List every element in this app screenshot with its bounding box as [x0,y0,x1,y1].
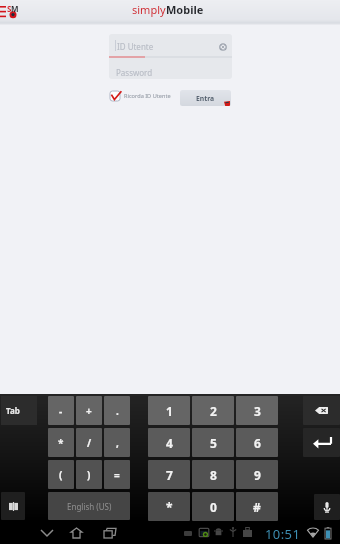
staticText: 7 [166,467,173,483]
button[interactable]: 9 [236,460,278,489]
button[interactable]: Menu [0,5,7,19]
button[interactable]: / [76,428,102,457]
staticText: ) [87,468,91,482]
button[interactable]: 4 [148,428,190,457]
staticText: S [7,3,12,14]
staticText: # [253,499,261,515]
button[interactable]: Ricorda ID Utente [110,90,171,101]
staticText: Mobile [166,2,204,17]
button[interactable]: Enter [303,428,340,457]
staticText: Entra [196,94,215,103]
staticText: 6 [254,435,261,451]
staticText: 8 [210,467,217,483]
button[interactable]: ID Utente [109,34,232,56]
button[interactable]: * [148,492,190,521]
staticText: * [58,436,64,450]
button[interactable]: 0 [192,492,234,521]
button[interactable]: ( [48,460,74,489]
staticText: 5 [210,435,217,451]
button[interactable]: 1 [148,396,190,425]
button[interactable]: 8 [192,460,234,489]
staticText: - [59,404,63,418]
button[interactable]: 6 [236,428,278,457]
button[interactable]: + [76,396,102,425]
button[interactable]: # [236,492,278,521]
button[interactable]: Tab [1,396,37,425]
button[interactable]: Change language [1,492,25,520]
button[interactable]: . [104,396,130,425]
staticText: M [11,3,19,14]
button[interactable]: 3 [236,396,278,425]
button[interactable]: 5 [192,428,234,457]
staticText: / [87,436,92,450]
staticText: 10:51 [265,525,301,543]
button[interactable]: * [48,428,74,457]
staticText: + [86,404,92,418]
staticText: 2 [210,403,217,419]
staticText: Tab [6,405,20,416]
button[interactable]: ) [76,460,102,489]
button[interactable]: Backspace [303,396,340,425]
staticText: 4 [166,435,173,451]
staticText: . [116,404,119,418]
staticText: 3 [254,403,261,419]
button[interactable]: = [104,460,130,489]
button[interactable]: 2 [192,396,234,425]
button[interactable]: English (US) [48,492,130,520]
staticText: 9 [254,467,261,483]
button[interactable]: Back [36,525,58,541]
button[interactable]: 7 [148,460,190,489]
staticText: ( [59,468,63,482]
button[interactable]: Recents [101,525,119,541]
staticText: 0 [210,499,217,515]
button[interactable]: Entra [180,90,231,106]
button[interactable]: Password [109,58,232,79]
staticText: Password [116,67,153,78]
staticText: = [114,468,120,482]
staticText: simply [132,2,166,17]
staticText: , [116,436,119,450]
button[interactable]: Clear [219,43,227,51]
staticText: 1 [166,403,173,419]
staticText: * [166,499,173,515]
staticText: ID Utente [117,41,154,52]
button[interactable]: - [48,396,74,425]
button[interactable]: , [104,428,130,457]
button[interactable]: Voice input [314,494,340,520]
staticText: English (US) [67,501,112,512]
button[interactable]: Home [67,525,86,541]
staticText: Ricorda ID Utente [124,92,171,100]
